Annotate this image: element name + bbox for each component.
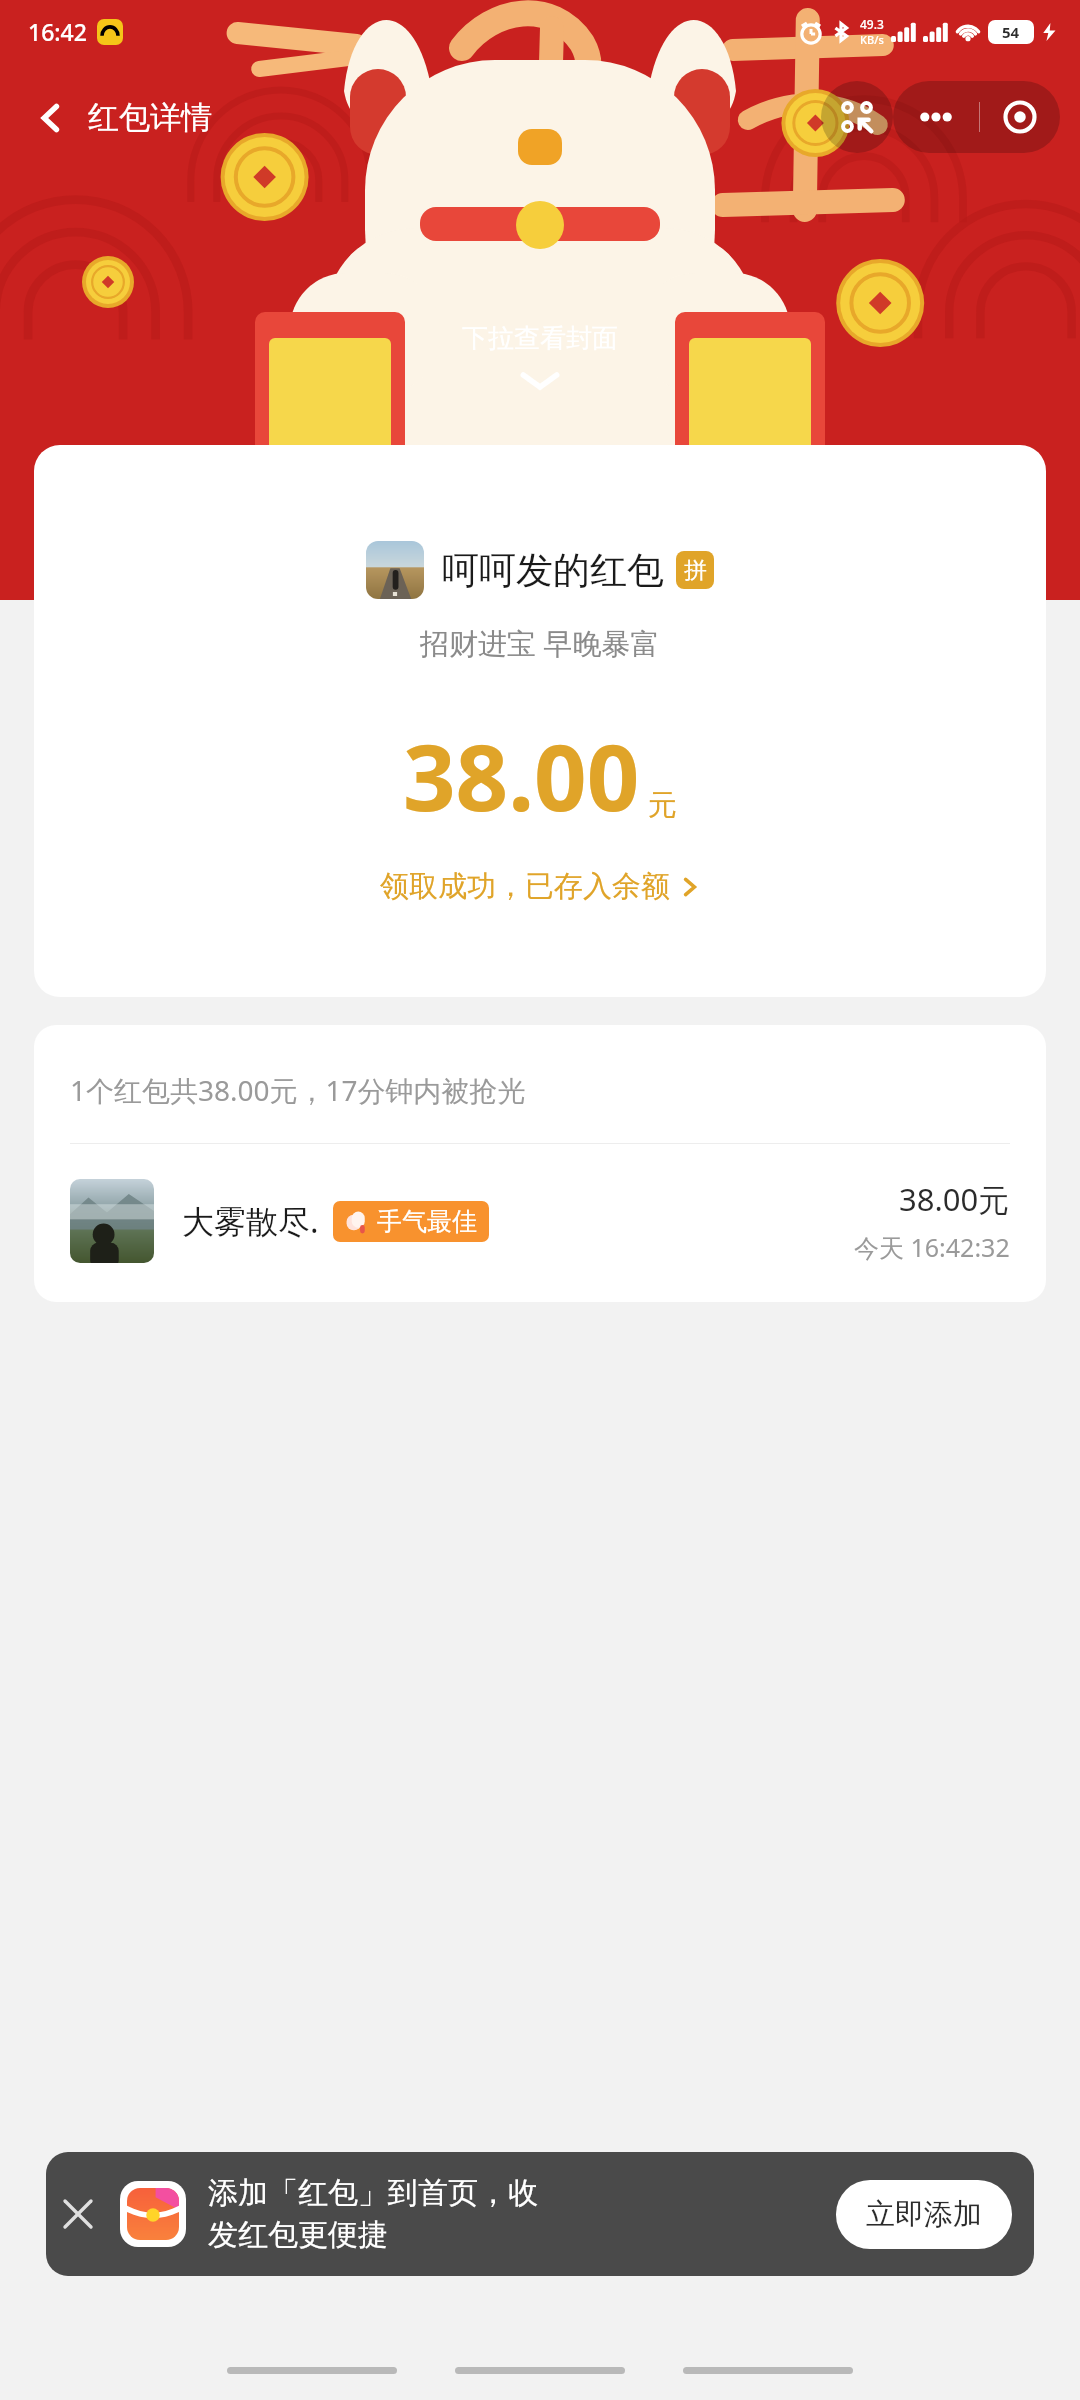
button[interactable]: Close: [980, 81, 1060, 153]
staticText: 红包详情: [88, 98, 212, 137]
staticText: 16:42: [28, 16, 87, 47]
button[interactable]: Back: [18, 88, 228, 147]
button[interactable]: 大雾散尽.: [34, 1144, 1046, 1302]
staticText: 38.00元: [899, 1178, 1010, 1220]
staticText: 54: [1002, 22, 1020, 42]
staticText: 38.00: [403, 713, 640, 838]
staticText: 手气最佳: [377, 1206, 477, 1237]
staticText: 拼: [684, 556, 707, 585]
staticText: 1个红包共38.00元，17分钟内被抢光: [70, 1071, 526, 1109]
staticText: 招财进宝 早晚暴富: [420, 623, 660, 663]
button[interactable]: 呵呵发的红包: [34, 445, 1046, 997]
button[interactable]: Mini programs: [821, 81, 893, 153]
staticText: 立即添加: [866, 2196, 982, 2233]
staticText: 大雾散尽.: [182, 1199, 319, 1243]
staticText: 49.3: [860, 16, 884, 32]
staticText: KB/s: [860, 32, 884, 47]
staticText: 领取成功，已存入余额: [380, 868, 670, 905]
staticText: 添加「红包」到首页，收 发红包更便捷: [208, 2174, 822, 2254]
staticText: 下拉查看封面: [462, 322, 618, 355]
staticText: 今天 16:42:32: [854, 1230, 1010, 1264]
button[interactable]: 立即添加: [836, 2180, 1012, 2249]
button[interactable]: More options: [893, 81, 979, 153]
button[interactable]: 领取成功，已存入余额: [372, 864, 708, 909]
staticText: 呵呵发的红包: [442, 547, 664, 594]
staticText: 元: [648, 787, 677, 824]
button[interactable]: Dismiss: [46, 2182, 110, 2246]
